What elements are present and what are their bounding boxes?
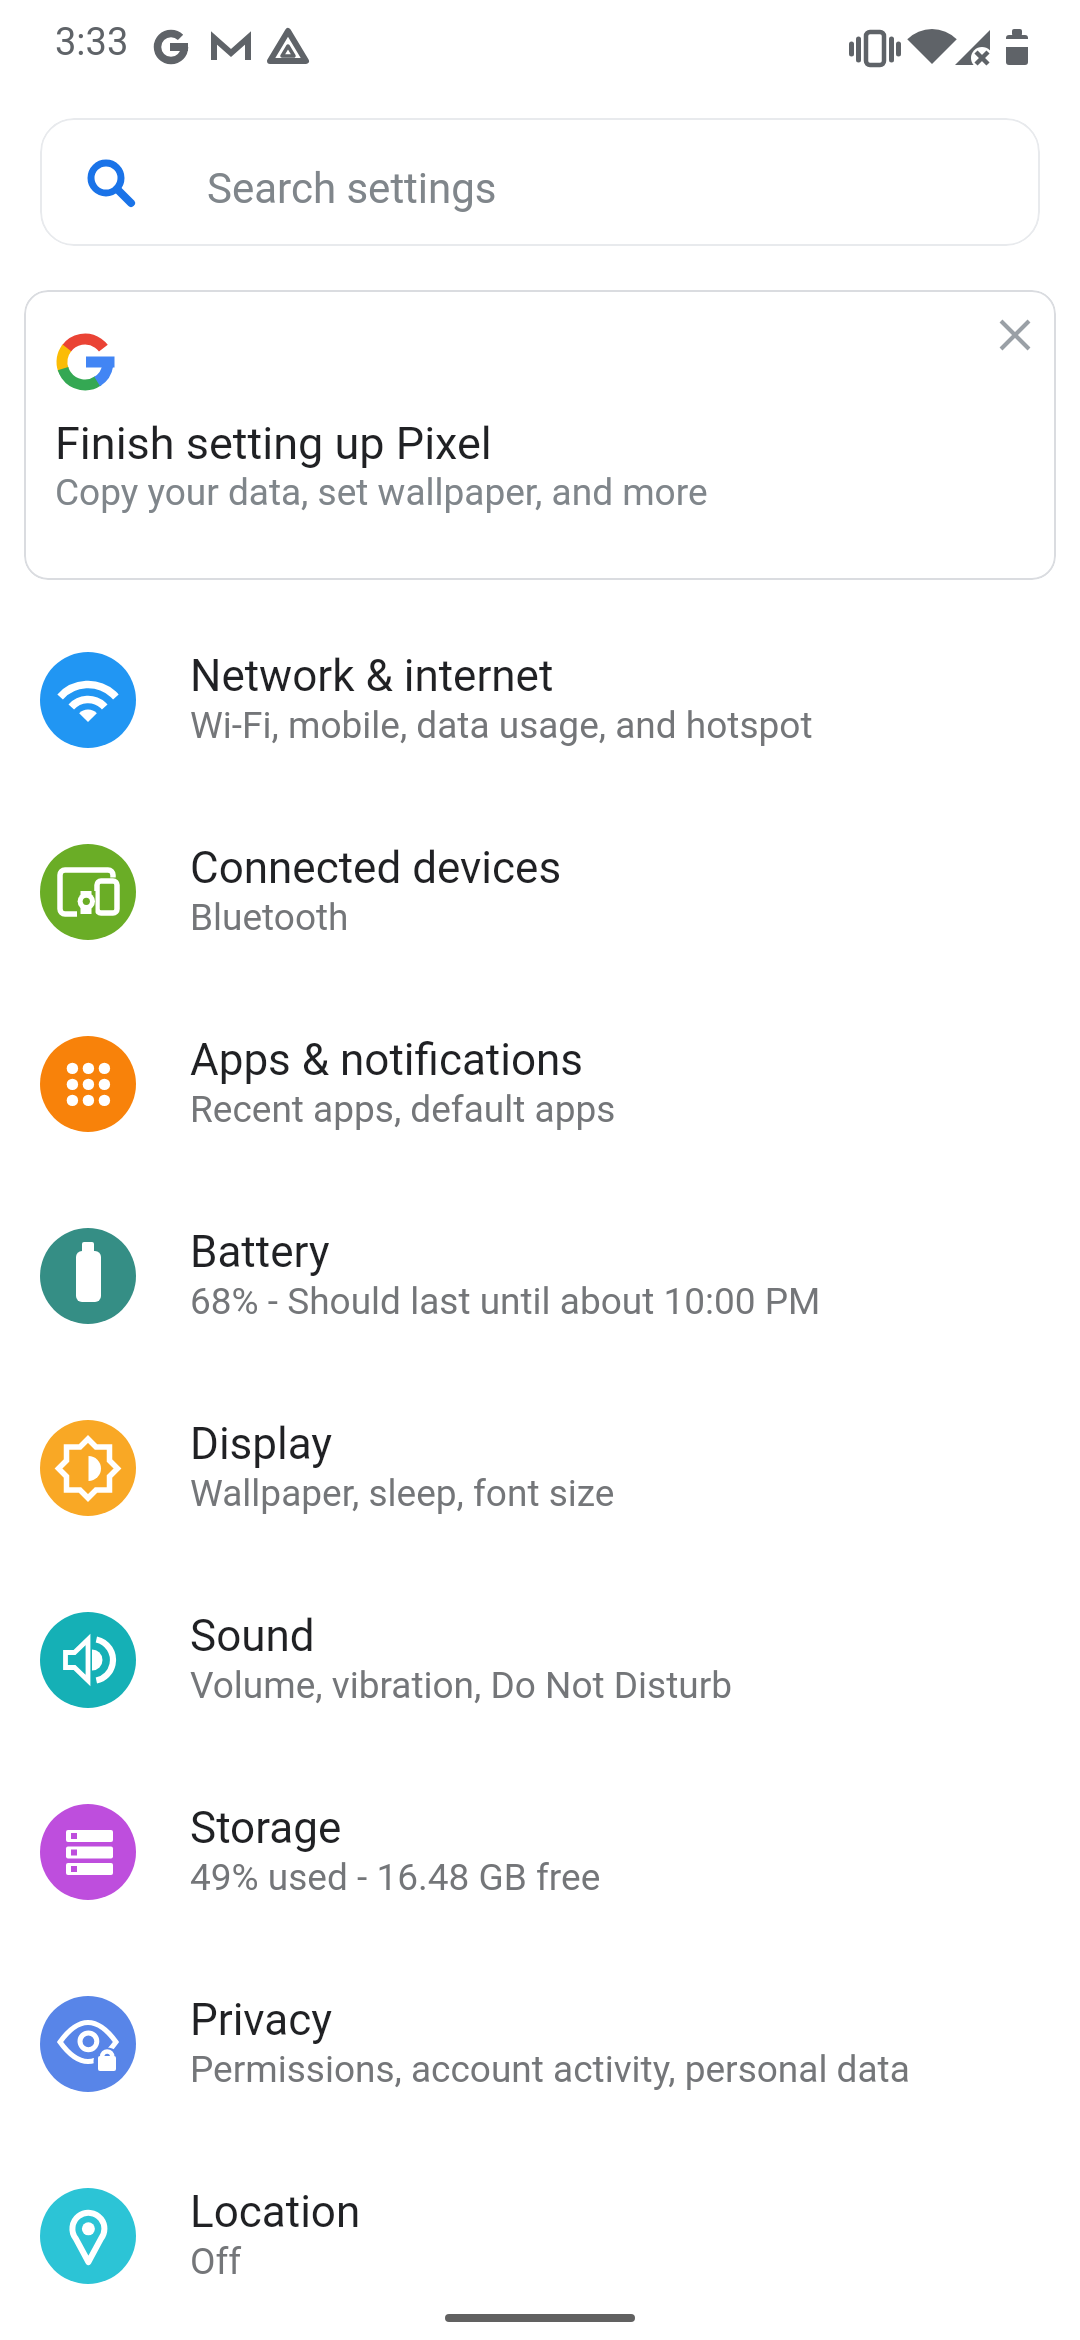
staticText: Finish setting up Pixel	[55, 417, 492, 470]
staticText: Recent apps, default apps	[190, 1088, 616, 1131]
button[interactable]: Sound	[0, 1564, 1080, 1756]
staticText: Wi-Fi, mobile, data usage, and hotspot	[190, 704, 813, 747]
staticText: Location	[190, 2186, 361, 2238]
staticText: Storage	[190, 1802, 342, 1854]
staticText: 3:33	[55, 20, 129, 65]
button[interactable]: Finish setting up Pixel	[24, 290, 1056, 580]
button[interactable]: Privacy	[0, 1948, 1080, 2140]
button[interactable]: Storage	[0, 1756, 1080, 1948]
staticText: Network & internet	[190, 650, 554, 702]
button[interactable]: Search settings	[40, 118, 1040, 246]
button[interactable]: Display	[0, 1372, 1080, 1564]
staticText: Wallpaper, sleep, font size	[190, 1472, 615, 1515]
staticText: Bluetooth	[190, 896, 349, 939]
staticText: Connected devices	[190, 842, 562, 894]
button[interactable]: Connected devices	[0, 796, 1080, 988]
button[interactable]: Apps & notifications	[0, 988, 1080, 1180]
button[interactable]: Network & internet	[0, 604, 1080, 796]
staticText: Display	[190, 1418, 333, 1470]
staticText: Battery	[190, 1226, 330, 1278]
staticText: Search settings	[207, 164, 497, 213]
button[interactable]: Location	[0, 2140, 1080, 2332]
staticText: Volume, vibration, Do Not Disturb	[190, 1664, 733, 1707]
staticText: Copy your data, set wallpaper, and more	[55, 471, 708, 514]
staticText: 49% used - 16.48 GB free	[190, 1856, 601, 1899]
button[interactable]: Battery	[0, 1180, 1080, 1372]
staticText: 68% - Should last until about 10:00 PM	[190, 1280, 821, 1323]
staticText: Permissions, account activity, personal …	[190, 2048, 910, 2091]
staticText: Off	[190, 2240, 242, 2283]
staticText: Apps & notifications	[190, 1034, 584, 1086]
staticText: Sound	[190, 1610, 315, 1662]
staticText: Privacy	[190, 1994, 333, 2046]
